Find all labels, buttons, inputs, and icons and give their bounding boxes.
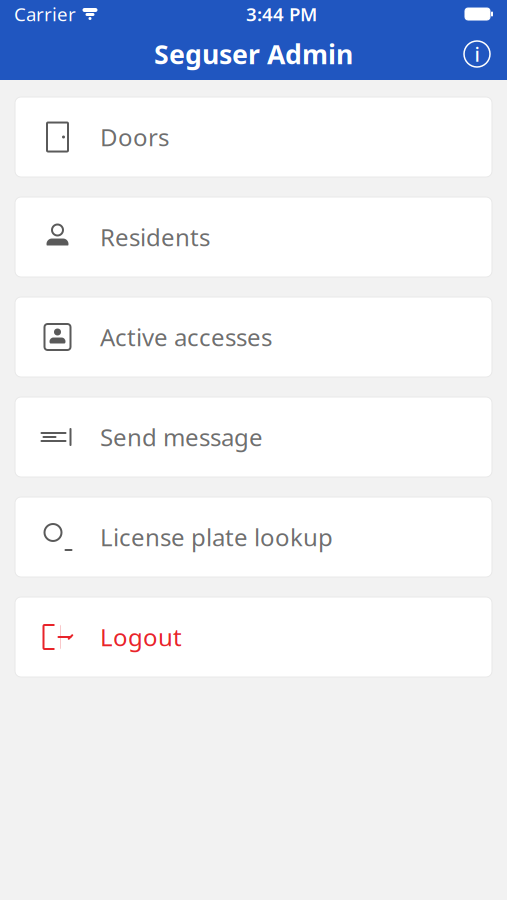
button[interactable]: License plate lookup	[15, 497, 492, 577]
staticText: Carrier	[14, 2, 76, 26]
staticText: Active accesses	[100, 321, 272, 353]
staticText: Send message	[100, 421, 263, 453]
staticText: 3:44 PM	[246, 2, 317, 26]
button[interactable]: Residents	[15, 197, 492, 277]
staticText: Residents	[100, 221, 210, 253]
staticText: Logout	[100, 621, 182, 653]
staticText: Doors	[100, 121, 169, 153]
button[interactable]: Active accesses	[15, 297, 492, 377]
staticText: License plate lookup	[100, 521, 333, 553]
button[interactable]: Doors	[15, 97, 492, 177]
staticText: i	[474, 41, 479, 67]
button[interactable]: Information	[455, 32, 499, 76]
button[interactable]: Logout	[15, 597, 492, 677]
staticText: Seguser Admin	[154, 36, 353, 72]
button[interactable]: Send message	[15, 397, 492, 477]
